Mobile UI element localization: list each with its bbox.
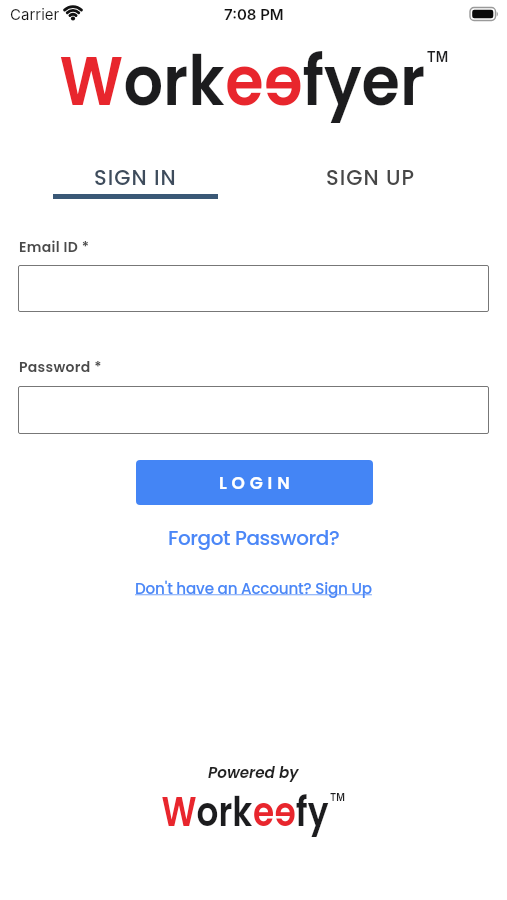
staticText: Password * bbox=[19, 357, 102, 377]
staticText: e bbox=[274, 784, 296, 840]
staticText: Powered by bbox=[208, 762, 299, 783]
staticText: fyer bbox=[303, 33, 425, 130]
staticText: 7:08 PM bbox=[224, 5, 284, 23]
button[interactable] bbox=[18, 386, 489, 434]
button[interactable]: SIGN IN bbox=[18, 155, 253, 199]
staticText: TM bbox=[330, 790, 345, 803]
button[interactable]: Forgot Password? bbox=[168, 524, 340, 552]
staticText: ork bbox=[123, 33, 225, 130]
staticText: Email ID * bbox=[19, 237, 90, 257]
staticText: W bbox=[60, 33, 123, 130]
staticText: SIGN UP bbox=[326, 163, 416, 192]
button[interactable] bbox=[18, 265, 489, 312]
staticText: e bbox=[225, 33, 264, 130]
staticText: fy bbox=[296, 784, 328, 840]
staticText: TM bbox=[427, 47, 448, 65]
button[interactable]: Don't have an Account? Sign Up bbox=[135, 578, 372, 599]
button[interactable]: SIGN UP bbox=[253, 155, 489, 199]
staticText: W bbox=[161, 784, 197, 840]
staticText: SIGN IN bbox=[94, 163, 177, 192]
staticText: e bbox=[264, 33, 303, 130]
button[interactable]: LOGIN bbox=[136, 460, 373, 505]
staticText: Carrier bbox=[10, 5, 60, 23]
staticText: LOGIN bbox=[219, 471, 295, 495]
staticText: ork bbox=[197, 784, 253, 840]
staticText: e bbox=[253, 784, 274, 840]
